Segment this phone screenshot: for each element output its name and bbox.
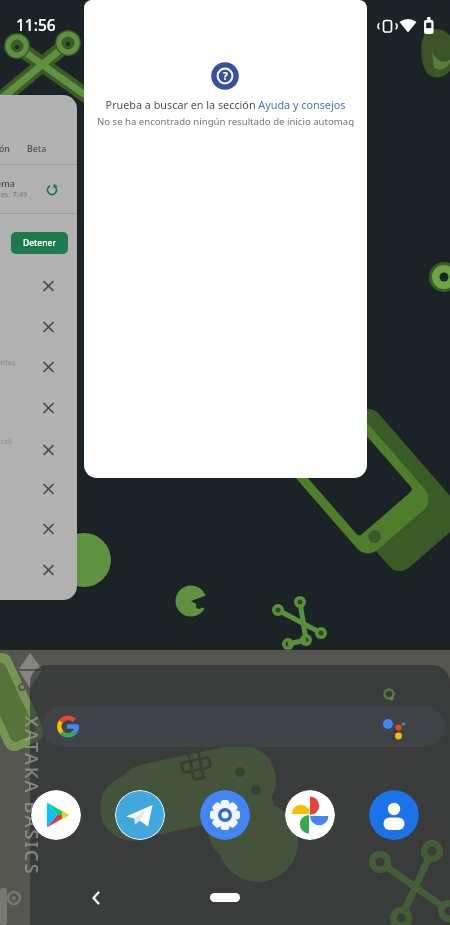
button[interactable]: ón (0, 95, 77, 600)
staticText: ? (223, 69, 228, 83)
staticText: nadas (0, 357, 16, 367)
staticText: No se ha encontrado ningún resultado de … (84, 115, 367, 128)
button[interactable] (42, 706, 445, 747)
button[interactable] (200, 790, 250, 840)
staticText: Detener (23, 237, 57, 249)
button[interactable] (31, 790, 81, 840)
button[interactable] (86, 888, 106, 908)
staticText: ón (0, 143, 10, 155)
button[interactable]: Detener (11, 232, 68, 254)
staticText: XATAKA BASICS (24, 716, 44, 876)
button[interactable] (115, 790, 165, 840)
button[interactable] (369, 790, 419, 840)
staticText: nes: 7:49 (0, 189, 28, 199)
button[interactable] (285, 790, 335, 840)
staticText: Beta (27, 143, 47, 155)
button[interactable]: ? (84, 0, 367, 478)
staticText: 11:56 (16, 14, 56, 35)
staticText: ema (0, 177, 15, 189)
staticText: Prueba a buscar en la sección Ayuda y co… (84, 97, 367, 112)
button[interactable] (210, 893, 240, 902)
staticText: a cali (0, 436, 12, 446)
